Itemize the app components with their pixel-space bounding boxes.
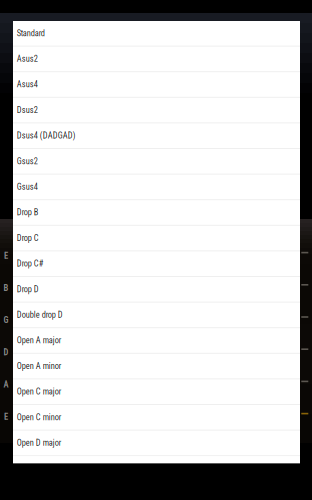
- staticText: E: [4, 251, 8, 261]
- button[interactable]: Drop C: [13, 226, 300, 251]
- staticText: Drop B: [17, 208, 39, 217]
- staticText: Asus2: [17, 54, 38, 64]
- button[interactable]: Open C minor: [13, 405, 300, 431]
- staticText: Open A major: [17, 336, 62, 345]
- button[interactable]: Open C major: [13, 379, 300, 405]
- staticText: Open D major: [17, 438, 62, 448]
- staticText: A: [3, 380, 8, 390]
- staticText: D: [3, 347, 8, 357]
- button[interactable]: Gsus4: [13, 175, 300, 200]
- staticText: Open A minor: [17, 361, 62, 371]
- button[interactable]: Standard: [13, 21, 300, 47]
- staticText: Double drop D: [17, 310, 63, 320]
- button[interactable]: Dsus4 (DADGAD): [13, 123, 300, 149]
- staticText: Gsus2: [17, 156, 38, 166]
- staticText: Open C minor: [17, 412, 62, 422]
- button[interactable]: Dsus2: [13, 98, 300, 123]
- button[interactable]: Gsus2: [13, 149, 300, 175]
- staticText: Standard: [17, 28, 45, 38]
- button[interactable]: Drop C#: [13, 251, 300, 277]
- staticText: B: [3, 283, 8, 293]
- staticText: Open C major: [17, 387, 62, 397]
- button[interactable]: Asus2: [13, 47, 300, 72]
- button[interactable]: Open D major: [13, 431, 300, 456]
- staticText: E: [4, 412, 8, 422]
- button[interactable]: Drop D: [13, 277, 300, 303]
- button[interactable]: Open A minor: [13, 354, 300, 379]
- staticText: Gsus4: [17, 182, 38, 192]
- staticText: Drop D: [17, 284, 39, 294]
- staticText: Dsus2: [17, 105, 38, 115]
- staticText: G: [3, 315, 8, 325]
- button[interactable]: Drop B: [13, 200, 300, 226]
- button[interactable]: Asus4: [13, 72, 300, 98]
- staticText: Dsus4 (DADGAD): [17, 131, 76, 141]
- staticText: Asus4: [17, 80, 38, 89]
- button[interactable]: Open A major: [13, 328, 300, 354]
- staticText: Drop C: [17, 233, 39, 243]
- staticText: Drop C#: [17, 259, 44, 269]
- button[interactable]: Double drop D: [13, 303, 300, 328]
